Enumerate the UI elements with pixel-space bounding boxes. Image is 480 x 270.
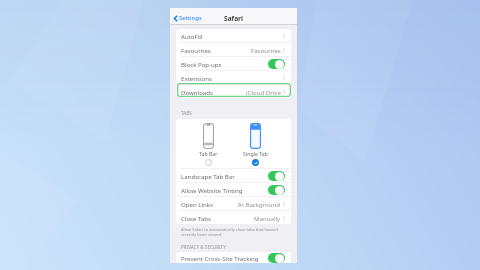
button[interactable]: Tab Bar — [188, 119, 228, 166]
button[interactable]: Downloads — [176, 85, 291, 98]
staticText: Single Tab — [243, 150, 268, 157]
staticText: Downloads — [181, 88, 213, 96]
button[interactable]: Landscape Tab Bar — [176, 169, 291, 182]
staticText: PRIVACY & SECURITY — [181, 244, 226, 250]
button[interactable]: AutoFill — [176, 29, 291, 42]
staticText: Safari — [224, 14, 244, 23]
button[interactable]: Open Links — [176, 197, 291, 210]
staticText: iCloud Drive — [246, 88, 281, 96]
staticText: Block Pop-ups — [181, 60, 222, 68]
staticText: Landscape Tab Bar — [181, 172, 235, 180]
button[interactable]: Extensions — [176, 71, 291, 84]
button[interactable]: Toggle — [268, 59, 285, 69]
staticText: Favourites — [181, 46, 211, 54]
staticText: Open Links — [181, 200, 213, 208]
button[interactable]: Block Pop-ups — [176, 57, 291, 70]
button[interactable]: Toggle — [268, 253, 285, 263]
staticText: Extensions — [181, 74, 212, 82]
staticText: TABS — [181, 110, 192, 116]
staticText: Tab Bar — [199, 150, 218, 157]
button[interactable]: Close Tabs — [176, 211, 291, 224]
button[interactable]: Favourites — [176, 43, 291, 56]
button[interactable]: Toggle — [268, 171, 285, 181]
button[interactable]: Toggle — [268, 185, 285, 195]
staticText: Allow Website Tinting — [181, 186, 243, 194]
staticText: Allow Safari to automatically close tabs… — [181, 227, 279, 237]
staticText: Prevent Cross-Site Tracking — [181, 254, 259, 262]
staticText: Favourites — [251, 46, 281, 54]
staticText: Manually — [254, 214, 281, 222]
button[interactable]: Settings — [174, 14, 202, 22]
staticText: AutoFill — [181, 32, 203, 40]
button[interactable]: Single Tab — [235, 119, 275, 166]
button[interactable]: Allow Website Tinting — [176, 183, 291, 196]
button[interactable]: Prevent Cross-Site Tracking — [176, 252, 291, 263]
staticText: Close Tabs — [181, 214, 212, 222]
staticText: Settings — [179, 14, 202, 22]
staticText: In Background — [238, 200, 281, 208]
